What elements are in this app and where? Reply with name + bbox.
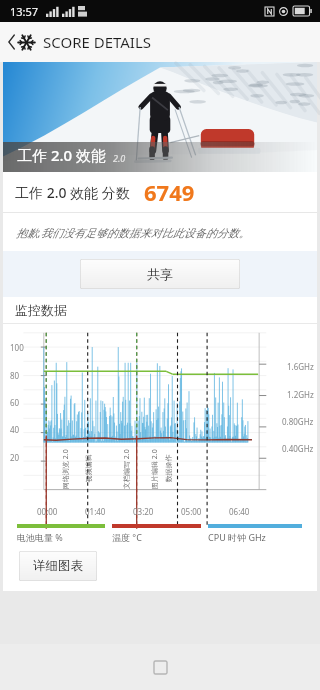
staticText: 2.0 xyxy=(113,152,126,164)
staticText: 视频编辑 xyxy=(83,454,92,482)
button[interactable]: Home xyxy=(140,647,180,687)
staticText: 6749 xyxy=(144,177,195,207)
staticText: 图片编辑 2.0 xyxy=(150,449,160,489)
staticText: 0.80GHz xyxy=(282,416,314,427)
staticText: 1.6GHz xyxy=(287,361,314,372)
staticText: 文档编写 2.0 xyxy=(122,449,132,489)
staticText: 共享 xyxy=(147,266,173,282)
staticText: 工作 2.0 效能 分数 xyxy=(15,183,130,202)
button[interactable]: Back xyxy=(5,30,17,54)
staticText: CPU 时钟 GHz xyxy=(208,531,266,543)
staticText: 0.40GHz xyxy=(282,443,314,454)
staticText: 06:40 xyxy=(229,506,250,517)
button[interactable]: 共享 xyxy=(80,259,240,289)
staticText: 05:00 xyxy=(181,506,202,517)
staticText: 数据操作 xyxy=(163,454,172,482)
staticText: 20 xyxy=(10,452,20,463)
staticText: 抱歉,我们没有足够的数据来对比此设备的分数。 xyxy=(16,225,250,240)
staticText: 40 xyxy=(10,424,20,435)
staticText: 00:00 xyxy=(37,506,58,517)
staticText: 电池电量 % xyxy=(17,531,63,543)
staticText: 03:20 xyxy=(133,506,154,517)
staticText: 01:40 xyxy=(85,506,106,517)
staticText: 网络浏览 2.0 xyxy=(61,449,71,489)
staticText: 13:57 xyxy=(10,4,39,19)
button[interactable]: 详细图表 xyxy=(19,551,97,581)
staticText: 80 xyxy=(10,370,20,381)
staticText: SCORE DETAILS xyxy=(43,32,152,52)
staticText: 60 xyxy=(10,397,20,408)
staticText: 详细图表 xyxy=(33,558,83,574)
staticText: 1.2GHz xyxy=(287,389,314,400)
button[interactable]: 工作 2.0 效能 xyxy=(3,62,317,172)
staticText: 100 xyxy=(10,342,24,353)
staticText: 温度 °C xyxy=(112,531,142,543)
staticText: 监控数据 xyxy=(15,302,67,318)
button[interactable]: Back xyxy=(0,22,320,62)
staticText: 工作 2.0 效能 xyxy=(17,145,107,165)
